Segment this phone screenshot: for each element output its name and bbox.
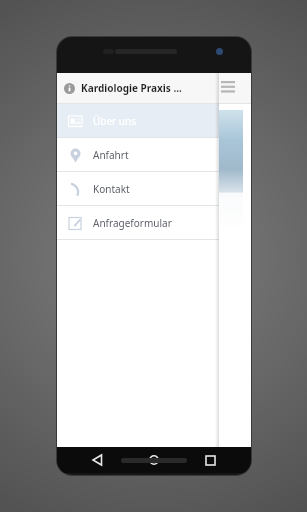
staticText: Anfahrt (93, 148, 129, 162)
button[interactable]: Anfahrt (57, 138, 219, 171)
staticText: Kardiologie Praxis ... (81, 81, 182, 95)
button[interactable]: Open navigation menu (215, 75, 241, 101)
button[interactable]: Anfrageformular (57, 206, 219, 239)
staticText: Über uns (93, 114, 136, 128)
button[interactable]: Über uns (57, 104, 219, 137)
button[interactable]: Recent apps (195, 447, 225, 473)
staticText: Anfrageformular (93, 216, 172, 230)
button[interactable]: Kontakt (57, 172, 219, 205)
staticText: Kontakt (93, 182, 130, 196)
button[interactable]: Home (139, 447, 169, 473)
button[interactable]: Back (83, 447, 113, 473)
